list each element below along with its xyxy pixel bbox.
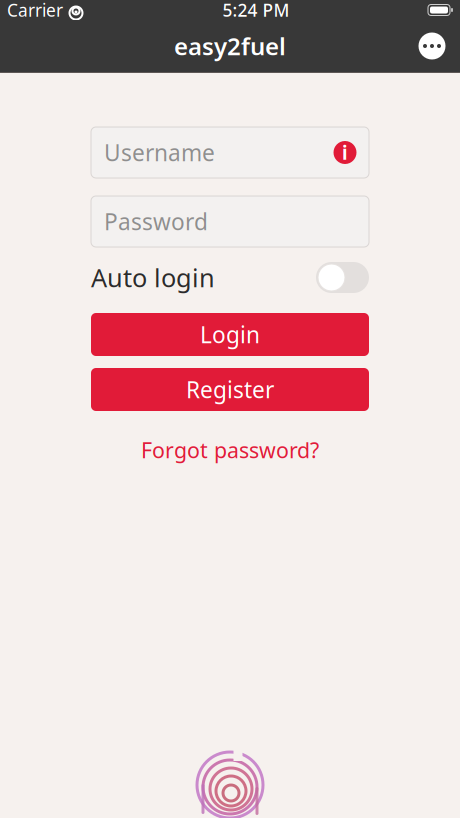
button[interactable]: Login bbox=[91, 313, 369, 356]
staticText: Auto login bbox=[91, 261, 215, 294]
button[interactable]: Forgot password? bbox=[91, 437, 369, 463]
staticText: Password bbox=[104, 206, 208, 236]
button[interactable]: More options bbox=[410, 24, 454, 68]
button[interactable]: Username bbox=[91, 127, 369, 178]
button[interactable]: Sign in with Touch ID bbox=[195, 752, 265, 818]
button[interactable]: Password bbox=[91, 196, 369, 247]
staticText: 5:24 PM bbox=[222, 0, 289, 21]
staticText: Login bbox=[200, 319, 260, 349]
staticText: i bbox=[342, 140, 348, 165]
staticText: Register bbox=[186, 374, 274, 404]
staticText: Carrier bbox=[7, 0, 63, 21]
button[interactable]: Register bbox=[91, 368, 369, 411]
staticText: easy2fuel bbox=[174, 30, 286, 62]
staticText: Forgot password? bbox=[141, 436, 319, 464]
button[interactable]: Username information bbox=[328, 135, 362, 169]
staticText: Username bbox=[104, 137, 215, 167]
button[interactable]: Auto login, off bbox=[316, 262, 369, 293]
